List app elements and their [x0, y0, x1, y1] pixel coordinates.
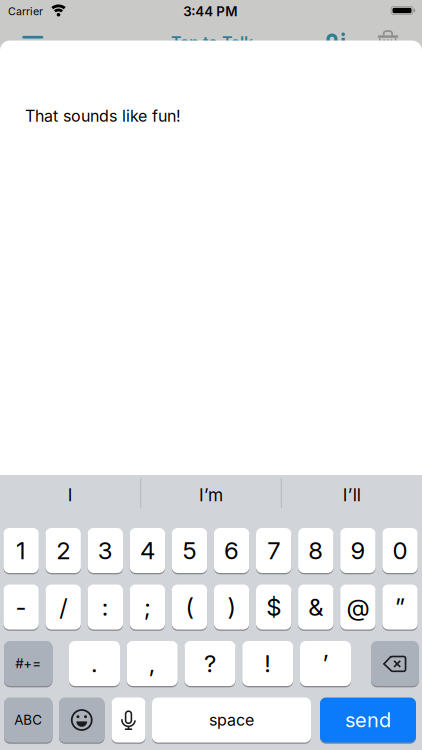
button[interactable]: ?: [184, 640, 235, 687]
button[interactable]: (: [172, 583, 207, 630]
staticText: /: [59, 593, 67, 621]
button[interactable]: 2: [45, 527, 81, 574]
button[interactable]: ): [214, 583, 249, 630]
staticText: 1: [16, 536, 26, 565]
staticText: Carrier: [8, 5, 43, 18]
staticText: (: [185, 593, 193, 621]
button[interactable]: Dictate: [111, 696, 145, 743]
button[interactable]: @: [340, 583, 376, 630]
staticText: 2: [56, 536, 70, 565]
button[interactable]: Delete text: [373, 27, 403, 51]
staticText: I’m: [199, 485, 223, 505]
staticText: ;: [144, 593, 151, 621]
staticText: ,: [149, 649, 156, 678]
staticText: :: [102, 593, 109, 621]
button[interactable]: 1: [3, 527, 39, 574]
staticText: 3:44 PM: [183, 3, 237, 19]
button[interactable]: 5: [172, 527, 207, 574]
staticText: 3: [98, 536, 113, 565]
staticText: &: [308, 593, 323, 621]
staticText: $: [266, 593, 281, 621]
button[interactable]: Menu: [18, 32, 48, 56]
staticText: space: [209, 711, 254, 729]
button[interactable]: ABC: [4, 696, 52, 743]
staticText: 8: [308, 536, 323, 565]
button[interactable]: .: [69, 640, 120, 687]
staticText: 9: [350, 536, 365, 565]
button[interactable]: -: [3, 583, 39, 630]
staticText: I: [68, 485, 73, 505]
button[interactable]: 6: [214, 527, 249, 574]
button[interactable]: ;: [130, 583, 165, 630]
button[interactable]: #+=: [4, 640, 52, 687]
staticText: send: [345, 708, 391, 732]
button[interactable]: ,: [127, 640, 178, 687]
button[interactable]: ’: [300, 640, 351, 687]
button[interactable]: 4: [130, 527, 165, 574]
button[interactable]: Profile: [323, 32, 346, 48]
staticText: That sounds like fun!: [25, 107, 181, 125]
button[interactable]: 8: [298, 527, 333, 574]
button[interactable]: &: [298, 583, 333, 630]
staticText: Tap to Talk: [171, 33, 253, 52]
button[interactable]: :: [88, 583, 123, 630]
staticText: ?: [204, 649, 216, 678]
button[interactable]: Delete: [371, 640, 419, 687]
button[interactable]: I’ll: [284, 472, 420, 518]
staticText: -: [16, 593, 27, 621]
staticText: ”: [395, 593, 405, 621]
staticText: I’ll: [343, 485, 361, 505]
staticText: ABC: [14, 712, 42, 728]
button[interactable]: send: [320, 696, 416, 743]
button[interactable]: 7: [256, 527, 291, 574]
button[interactable]: 9: [340, 527, 376, 574]
staticText: #+=: [15, 656, 41, 671]
staticText: ): [228, 593, 236, 621]
button[interactable]: I: [2, 472, 138, 518]
button[interactable]: space: [152, 696, 311, 743]
button[interactable]: !: [242, 640, 293, 687]
staticText: 4: [140, 536, 155, 565]
staticText: 7: [267, 536, 280, 565]
staticText: !: [264, 649, 271, 678]
button[interactable]: /: [45, 583, 81, 630]
button[interactable]: ”: [382, 583, 418, 630]
staticText: 6: [224, 536, 239, 565]
staticText: ’: [322, 649, 328, 678]
button[interactable]: I’m: [143, 472, 279, 518]
button[interactable]: 0: [382, 527, 418, 574]
staticText: 0: [392, 536, 407, 565]
button[interactable]: 3: [88, 527, 123, 574]
staticText: 5: [182, 536, 196, 565]
staticText: @: [346, 593, 369, 621]
staticText: .: [91, 649, 98, 678]
button[interactable]: Emoji: [59, 696, 104, 743]
button[interactable]: $: [256, 583, 291, 630]
